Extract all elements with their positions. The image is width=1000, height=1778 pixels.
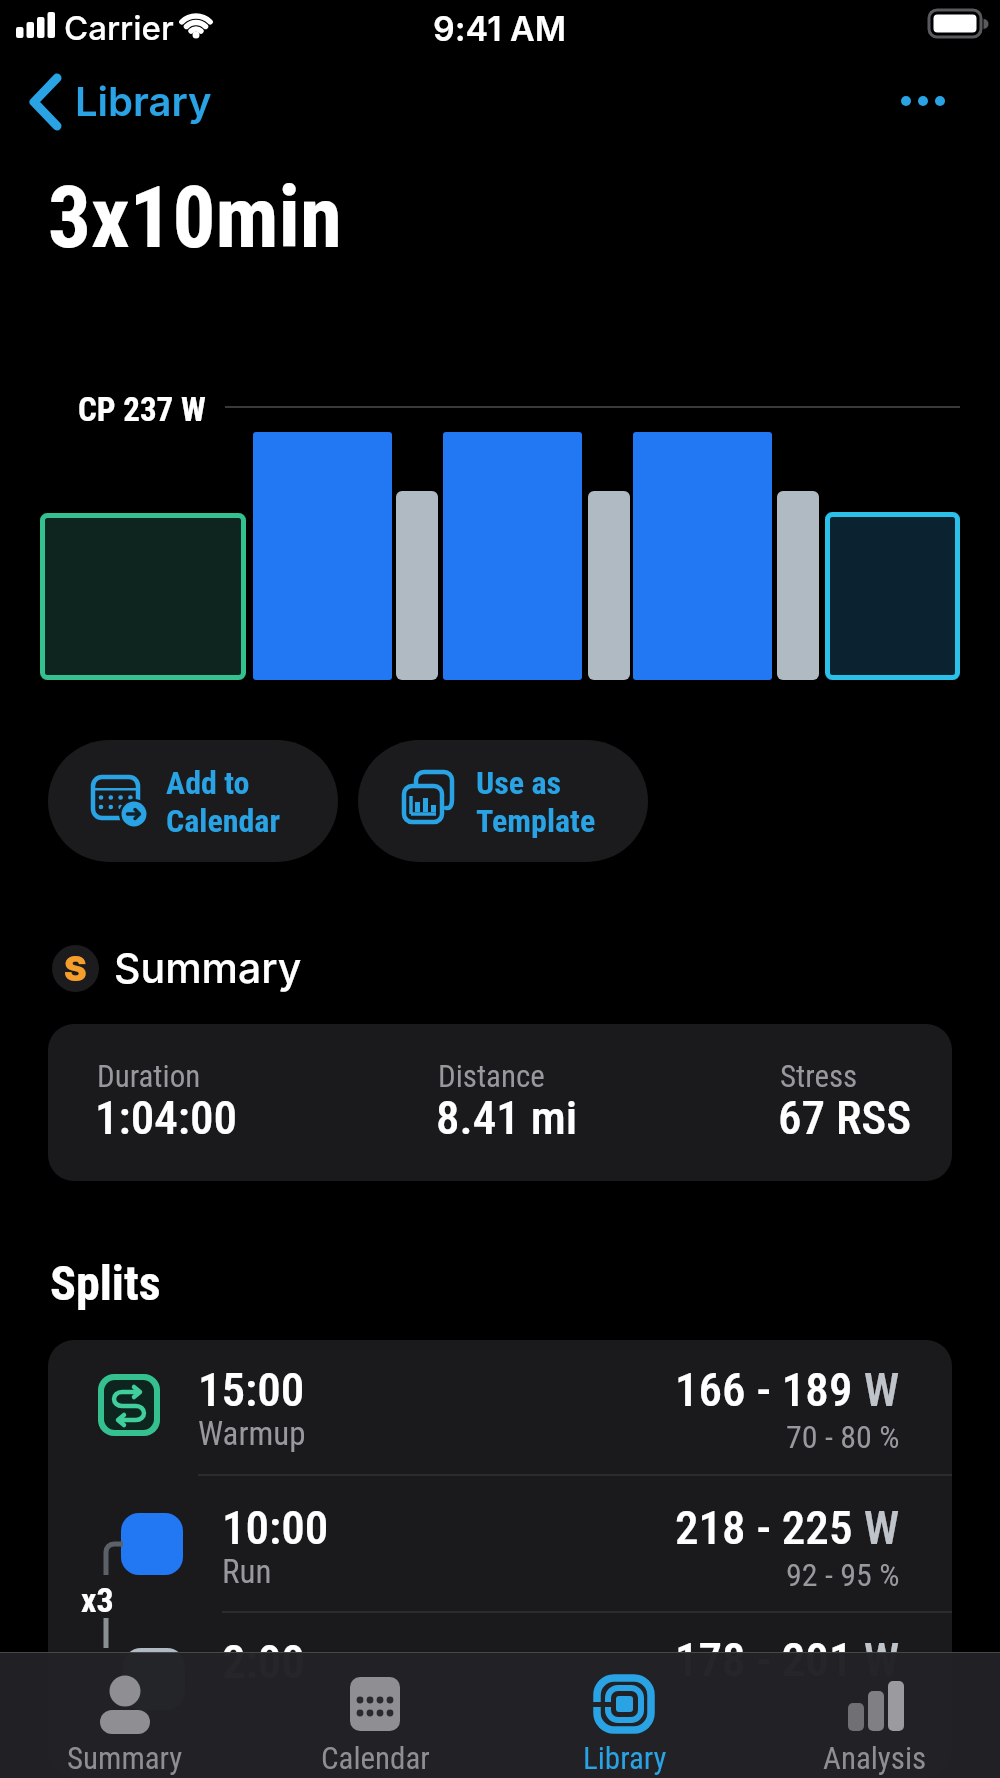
button[interactable]: Calendar bbox=[250, 1652, 500, 1778]
staticText: CP 237 W bbox=[78, 390, 206, 429]
staticText: 178 - 201 bbox=[675, 1632, 853, 1687]
staticText: W bbox=[853, 1500, 900, 1555]
staticText: Template bbox=[476, 802, 596, 840]
staticText: Analysis bbox=[823, 1740, 927, 1776]
staticText: W bbox=[853, 1632, 900, 1687]
staticText: Add to bbox=[166, 764, 250, 802]
button[interactable]: Analysis bbox=[750, 1652, 1000, 1778]
staticText: Library bbox=[583, 1740, 667, 1776]
staticText: 10:00 bbox=[222, 1500, 329, 1555]
staticText: Run bbox=[222, 1552, 272, 1591]
button[interactable]: Summary bbox=[0, 1652, 250, 1778]
button[interactable] bbox=[48, 1480, 952, 1616]
staticText: Summary bbox=[67, 1740, 183, 1776]
staticText: Distance bbox=[438, 1058, 545, 1094]
staticText: S bbox=[64, 948, 87, 989]
staticText: Duration bbox=[97, 1058, 201, 1094]
button[interactable]: Use as bbox=[358, 740, 648, 862]
staticText: 92 - 95 % bbox=[786, 1556, 900, 1594]
staticText: Summary bbox=[114, 943, 302, 993]
staticText: Calendar bbox=[321, 1740, 430, 1776]
staticText: Calendar bbox=[166, 802, 281, 840]
button[interactable] bbox=[885, 80, 960, 122]
button[interactable]: Add to bbox=[48, 740, 338, 862]
staticText: 2:00 bbox=[222, 1634, 305, 1689]
staticText: Carrier bbox=[64, 8, 174, 48]
staticText: Splits bbox=[50, 1255, 161, 1311]
staticText: Library bbox=[75, 77, 212, 125]
button[interactable]: Duration bbox=[48, 1024, 952, 1181]
staticText: Stress bbox=[780, 1058, 858, 1094]
button[interactable]: Library bbox=[500, 1652, 750, 1778]
button[interactable]: Library bbox=[20, 70, 220, 134]
staticText: W bbox=[853, 1362, 900, 1417]
staticText: 1:04:00 bbox=[95, 1090, 238, 1145]
staticText: 3x10min bbox=[48, 168, 342, 268]
staticText: 15:00 bbox=[198, 1362, 305, 1417]
staticText: 218 - 225 bbox=[675, 1500, 853, 1555]
staticText: 8.41 mi bbox=[436, 1090, 578, 1145]
staticText: 9:41 AM bbox=[433, 8, 567, 49]
staticText: 70 - 80 % bbox=[786, 1418, 900, 1456]
button[interactable] bbox=[48, 1340, 952, 1480]
staticText: Warmup bbox=[198, 1414, 306, 1453]
staticText: x3 bbox=[81, 1580, 114, 1620]
staticText: 166 - 189 bbox=[675, 1362, 853, 1417]
staticText: Use as bbox=[476, 764, 562, 802]
staticText: 67 RSS bbox=[778, 1090, 912, 1145]
